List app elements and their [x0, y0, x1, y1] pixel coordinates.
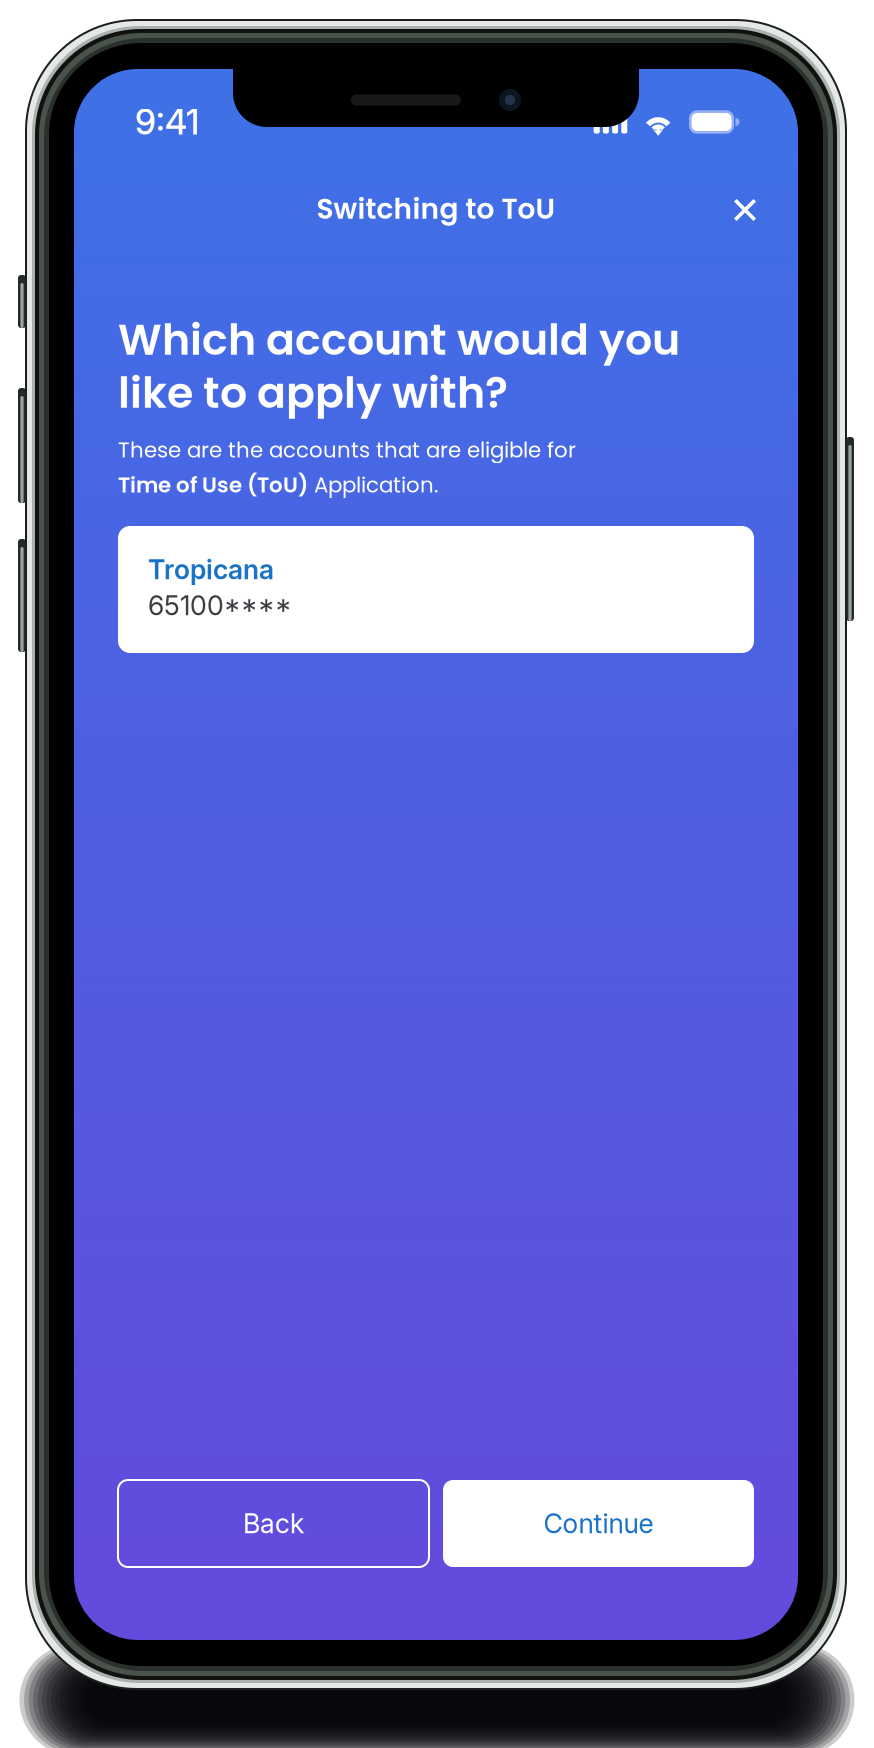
- button[interactable]: Tropicana: [118, 526, 754, 653]
- button[interactable]: Close: [717, 188, 773, 232]
- staticText: Switching to ToU: [316, 189, 555, 229]
- staticText: Which account would you: [118, 310, 680, 370]
- staticText: 65100****: [148, 589, 292, 622]
- staticText: Tropicana: [148, 553, 274, 586]
- staticText: Application.: [308, 470, 438, 500]
- staticText: Continue: [543, 1507, 653, 1540]
- staticText: Time of Use (ToU): [118, 470, 308, 500]
- staticText: These are the accounts that are eligible…: [118, 435, 576, 465]
- button[interactable]: Back: [118, 1480, 429, 1567]
- button[interactable]: Continue: [443, 1480, 754, 1567]
- staticText: Back: [243, 1507, 304, 1540]
- staticText: like to apply with?: [118, 363, 508, 423]
- staticText: 9:41: [135, 101, 199, 143]
